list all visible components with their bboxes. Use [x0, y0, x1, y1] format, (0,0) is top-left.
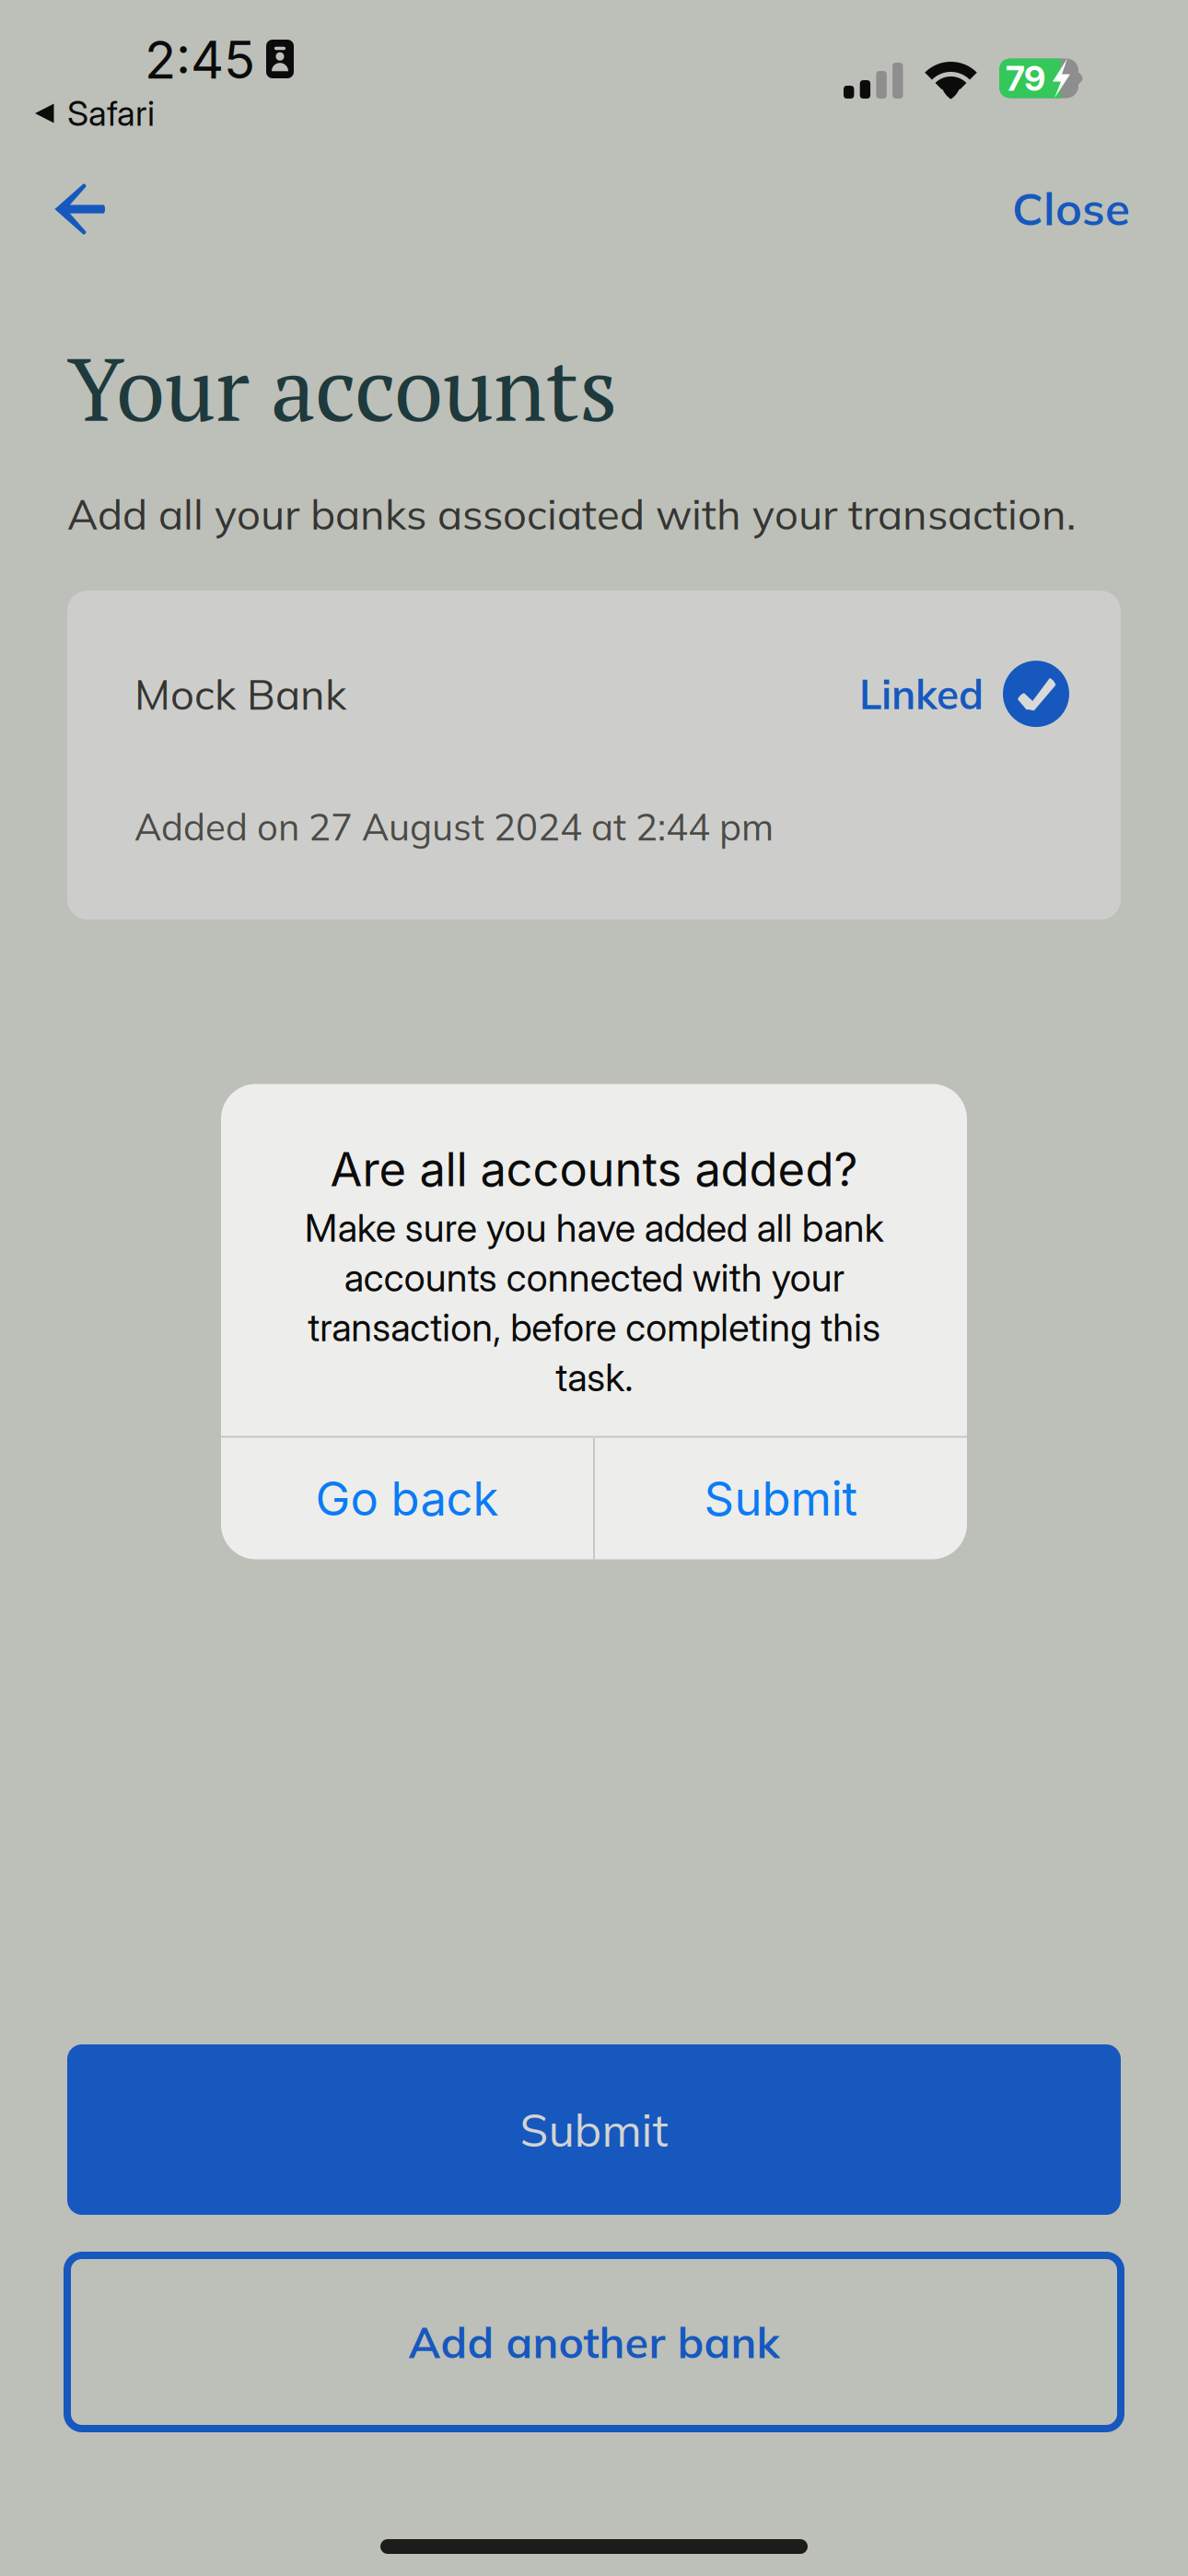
button[interactable]: Submit: [595, 1438, 967, 1559]
staticText: Safari: [67, 93, 155, 134]
staticText: 79: [1006, 57, 1045, 99]
staticText: Added on 27 August 2024 at 2:44 pm: [134, 803, 774, 850]
staticText: Are all accounts added?: [330, 1141, 858, 1198]
staticText: Go back: [315, 1470, 499, 1527]
button[interactable]: Submit: [67, 2044, 1121, 2215]
staticText: Submit: [704, 1470, 858, 1527]
staticText: 2:45: [145, 29, 255, 91]
staticText: Add another bank: [408, 2315, 780, 2369]
button[interactable]: Add another bank: [67, 2255, 1121, 2429]
staticText: Mock Bank: [134, 668, 346, 720]
button[interactable]: Go back: [221, 1438, 593, 1559]
staticText: Make sure you have added all bank accoun…: [304, 1205, 884, 1400]
staticText: Linked: [859, 668, 984, 719]
button[interactable]: Close: [984, 147, 1188, 254]
staticText: Your accounts: [67, 329, 618, 446]
staticText: Submit: [520, 2101, 668, 2158]
staticText: Close: [1012, 180, 1130, 237]
button[interactable]: Back: [0, 147, 135, 254]
staticText: Add all your banks associated with your …: [67, 488, 1076, 540]
